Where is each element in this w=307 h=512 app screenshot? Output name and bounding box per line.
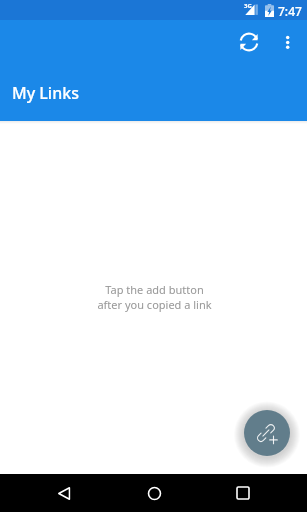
button[interactable]: More options (271, 26, 303, 58)
staticText: My Links (12, 82, 79, 104)
staticText: Tap the add button (105, 282, 204, 297)
button[interactable]: Back (44, 474, 84, 512)
button[interactable]: Refresh (233, 26, 265, 58)
staticText: 3G (244, 2, 252, 10)
button[interactable]: Add link (244, 410, 290, 456)
staticText: 7:47 (278, 3, 302, 19)
staticText: after you copied a link (97, 297, 212, 312)
button[interactable]: Recents (223, 474, 263, 512)
button[interactable]: Home (134, 474, 174, 512)
